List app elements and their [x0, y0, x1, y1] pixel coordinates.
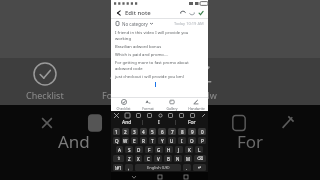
- staticText: F: [148, 147, 151, 153]
- staticText: I friend in this video I will provide yo…: [115, 30, 204, 42]
- button[interactable]: Recents: [182, 173, 189, 180]
- staticText: Which is paid and promo....: [115, 52, 169, 58]
- button[interactable]: Save: [196, 8, 205, 17]
- staticText: E: [133, 138, 136, 144]
- staticText: R: [142, 138, 145, 144]
- button[interactable]: U: [168, 137, 176, 144]
- button[interactable]: .: [183, 164, 191, 171]
- button[interactable]: 1: [113, 128, 120, 135]
- button[interactable]: Symbols: [113, 164, 123, 171]
- button[interactable]: A: [116, 146, 123, 153]
- staticText: M: [186, 156, 190, 162]
- button[interactable]: E: [131, 137, 138, 144]
- button[interactable]: Sticker: [178, 112, 184, 118]
- staticText: D: [137, 147, 141, 153]
- button[interactable]: Gallery: [160, 98, 184, 111]
- button[interactable]: Keyboard: [124, 112, 130, 118]
- button[interactable]: English (UK): [135, 164, 181, 171]
- staticText: B: [167, 156, 170, 162]
- button[interactable]: For: [176, 118, 208, 127]
- button[interactable]: 5: [149, 128, 156, 135]
- staticText: Y: [161, 138, 164, 144]
- staticText: Today 10:19 AM: [174, 21, 204, 26]
- button[interactable]: I: [178, 137, 186, 144]
- staticText: ⇧: [117, 156, 121, 161]
- button[interactable]: ,: [125, 164, 133, 171]
- button[interactable]: 6: [158, 128, 166, 135]
- button[interactable]: W: [122, 137, 129, 144]
- staticText: And: [122, 119, 132, 126]
- button[interactable]: Pin: [200, 112, 206, 118]
- button[interactable]: D: [135, 146, 143, 153]
- button[interactable]: X: [135, 155, 142, 162]
- button[interactable]: Format: [136, 98, 160, 111]
- staticText: G: [157, 147, 161, 153]
- button[interactable]: Back: [114, 8, 123, 17]
- button[interactable]: Undo: [178, 8, 187, 17]
- button[interactable]: Emoji: [167, 112, 173, 118]
- button[interactable]: H: [165, 146, 173, 153]
- staticText: English (UK): [147, 165, 170, 170]
- staticText: L: [198, 147, 201, 153]
- staticText: N: [176, 156, 180, 162]
- staticText: V: [157, 156, 160, 162]
- button[interactable]: R: [140, 137, 147, 144]
- staticText: .: [186, 165, 188, 171]
- button[interactable]: M: [184, 155, 192, 162]
- staticText: 9: [191, 129, 194, 135]
- button[interactable]: Clipboard: [146, 112, 152, 118]
- button[interactable]: O: [188, 137, 196, 144]
- button[interactable]: T: [149, 137, 156, 144]
- button[interactable]: P: [198, 137, 206, 144]
- button[interactable]: G: [155, 146, 163, 153]
- button[interactable]: Home: [156, 173, 163, 180]
- button[interactable]: Z: [126, 155, 133, 162]
- button[interactable]: F: [145, 146, 153, 153]
- button[interactable]: Handwrite: [184, 98, 208, 111]
- staticText: K: [188, 147, 191, 153]
- staticText: 6: [161, 129, 164, 135]
- button[interactable]: Close: [113, 112, 119, 118]
- button[interactable]: N: [174, 155, 182, 162]
- button[interactable]: L: [195, 146, 203, 153]
- button[interactable]: Shift: [113, 155, 124, 162]
- button[interactable]: 9: [188, 128, 196, 135]
- staticText: Format: [102, 89, 133, 101]
- button[interactable]: 7: [168, 128, 176, 135]
- staticText: just checkout i will provide you bml: [115, 74, 184, 80]
- button[interactable]: K: [185, 146, 193, 153]
- staticText: !#1: [115, 165, 122, 171]
- staticText: J: [178, 147, 180, 153]
- button[interactable]: Q: [113, 137, 120, 144]
- staticText: 8: [181, 129, 184, 135]
- button[interactable]: 0: [198, 128, 206, 135]
- button[interactable]: 4: [140, 128, 147, 135]
- button[interactable]: Enter: [193, 164, 206, 171]
- button[interactable]: J: [175, 146, 183, 153]
- staticText: For: [188, 119, 196, 126]
- button[interactable]: Backspace: [194, 155, 206, 162]
- button[interactable]: C: [144, 155, 152, 162]
- button[interactable]: B: [164, 155, 172, 162]
- button[interactable]: 8: [178, 128, 186, 135]
- staticText: Q: [115, 138, 119, 144]
- staticText: Gallery: [166, 106, 178, 111]
- staticText: X: [137, 156, 140, 162]
- button[interactable]: V: [154, 155, 162, 162]
- button[interactable]: 2: [122, 128, 129, 135]
- button[interactable]: S: [125, 146, 133, 153]
- button[interactable]: GIF: [135, 112, 141, 118]
- button[interactable]: Settings: [157, 112, 163, 118]
- button[interactable]: Redo: [187, 8, 196, 17]
- button[interactable]: Back: [130, 173, 137, 180]
- button[interactable]: Theme: [189, 112, 195, 118]
- button[interactable]: And: [111, 118, 142, 127]
- button[interactable]: 3: [131, 128, 138, 135]
- staticText: 5: [151, 129, 154, 135]
- button[interactable]: I: [143, 118, 175, 127]
- button[interactable]: No category: [115, 19, 204, 28]
- staticText: Checklist: [116, 106, 131, 111]
- button[interactable]: Y: [158, 137, 166, 144]
- button[interactable]: Checklist: [111, 98, 136, 111]
- staticText: I: [158, 119, 160, 126]
